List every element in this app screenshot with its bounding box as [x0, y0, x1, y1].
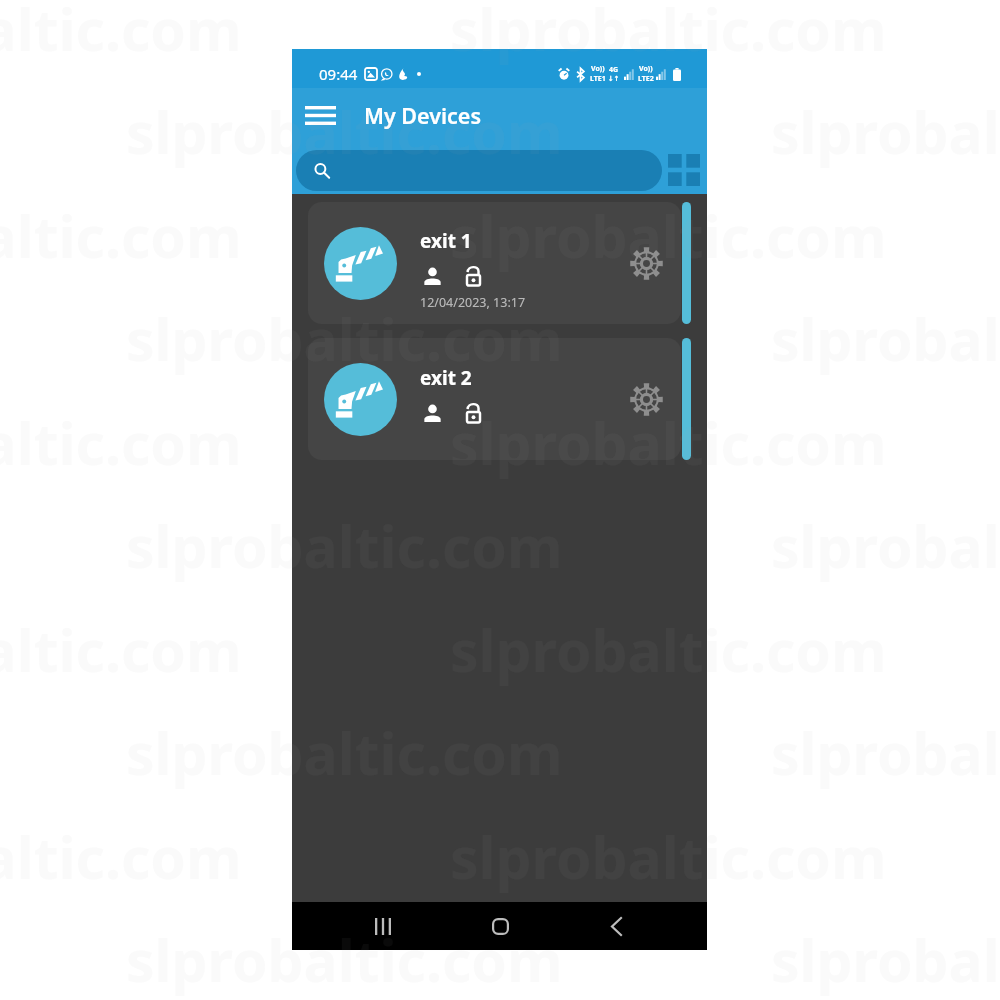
button[interactable]	[308, 202, 681, 324]
button[interactable]: Device settings	[626, 243, 666, 283]
button[interactable]	[296, 150, 662, 191]
staticText: Vo))	[591, 64, 605, 74]
staticText: 12/04/2023, 13:17	[420, 294, 526, 311]
staticText: My Devices	[364, 101, 482, 130]
button[interactable]: Open navigation menu	[299, 94, 341, 136]
button[interactable]: Home	[474, 902, 526, 950]
button[interactable]: Grid view	[664, 150, 704, 190]
staticText: LTE2	[638, 74, 654, 84]
staticText: exit 1	[420, 228, 472, 254]
staticText: LTE1	[590, 74, 606, 84]
staticText: 4G	[609, 65, 619, 75]
button[interactable]	[308, 338, 681, 460]
staticText: exit 2	[420, 365, 472, 391]
staticText: 09:44	[319, 64, 358, 84]
button[interactable]: Device settings	[626, 379, 666, 419]
button[interactable]: Recent apps	[357, 902, 409, 950]
staticText: Vo))	[639, 64, 653, 74]
staticText: ↓↑	[608, 75, 620, 83]
button[interactable]: Back	[590, 902, 642, 950]
